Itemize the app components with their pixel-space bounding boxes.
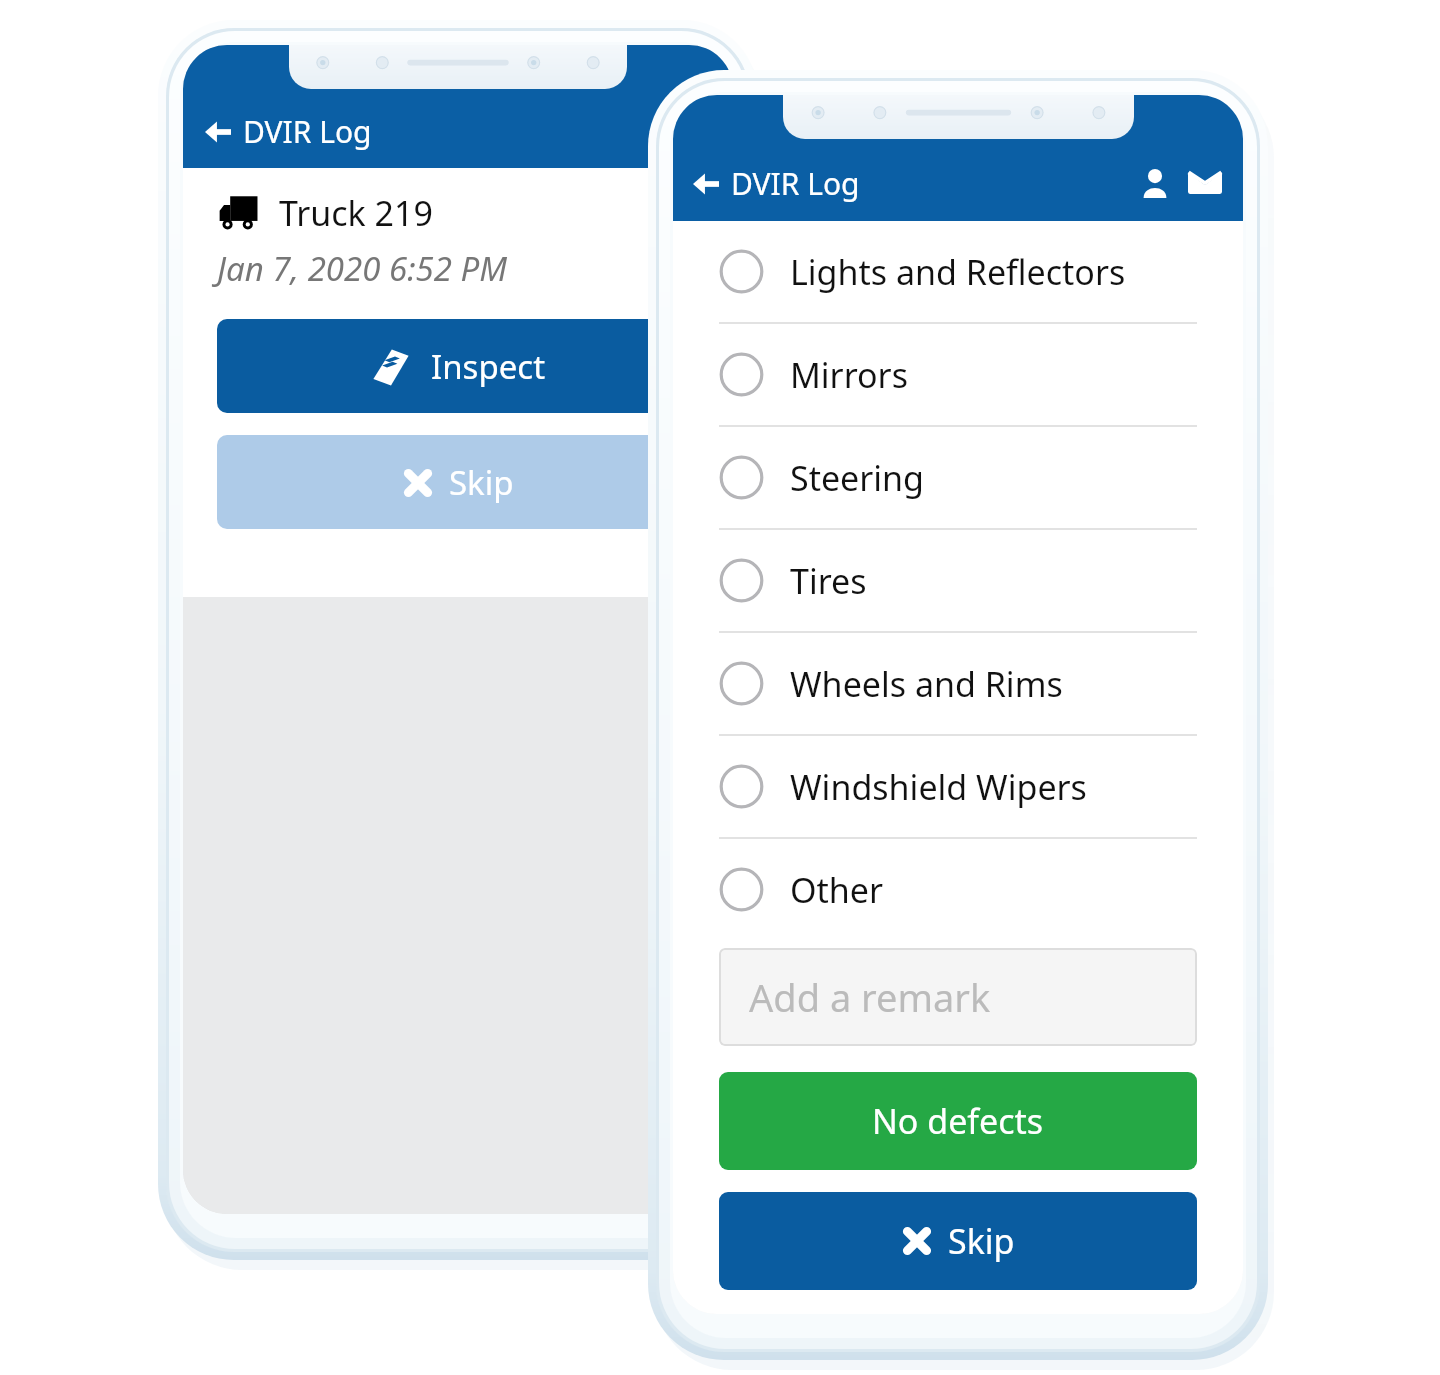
button[interactable]: DVIR Log <box>689 157 864 210</box>
staticText: Add a remark <box>749 971 991 1023</box>
button[interactable]: Wheels and Rims <box>673 633 1243 734</box>
staticText: Tires <box>790 558 867 604</box>
button[interactable]: Inspect <box>217 319 699 413</box>
staticText: Steering <box>790 455 925 501</box>
button[interactable]: No defects <box>719 1072 1197 1170</box>
staticText: No defects <box>872 1098 1044 1144</box>
staticText: Windshield Wipers <box>790 764 1087 810</box>
button[interactable]: Lights and Reflectors <box>673 221 1243 322</box>
button[interactable]: Profile <box>673 110 715 152</box>
button[interactable]: Tires <box>673 530 1243 631</box>
button[interactable]: Skip <box>719 1192 1197 1290</box>
button[interactable]: Profile <box>1135 163 1175 203</box>
button[interactable]: Messages <box>1183 161 1227 205</box>
staticText: Skip <box>948 1218 1015 1264</box>
staticText: DVIR Log <box>243 111 372 152</box>
staticText: Other <box>790 867 884 913</box>
staticText: DVIR Log <box>731 163 860 204</box>
staticText: Jan 7, 2020 6:52 PM <box>217 246 508 291</box>
staticText: Inspect <box>431 344 546 389</box>
staticText: Mirrors <box>790 352 908 398</box>
staticText: Truck 219 <box>279 190 433 236</box>
button[interactable]: Other <box>673 839 1243 940</box>
button[interactable]: DVIR Log <box>201 105 376 158</box>
staticText: Wheels and Rims <box>790 661 1063 707</box>
staticText: Skip <box>449 460 514 505</box>
staticText: Lights and Reflectors <box>790 249 1126 295</box>
button[interactable]: Skip <box>217 435 699 529</box>
button[interactable]: Mirrors <box>673 324 1243 425</box>
button[interactable]: Steering <box>673 427 1243 528</box>
button[interactable]: Windshield Wipers <box>673 736 1243 837</box>
button[interactable]: Add a remark <box>719 948 1197 1046</box>
